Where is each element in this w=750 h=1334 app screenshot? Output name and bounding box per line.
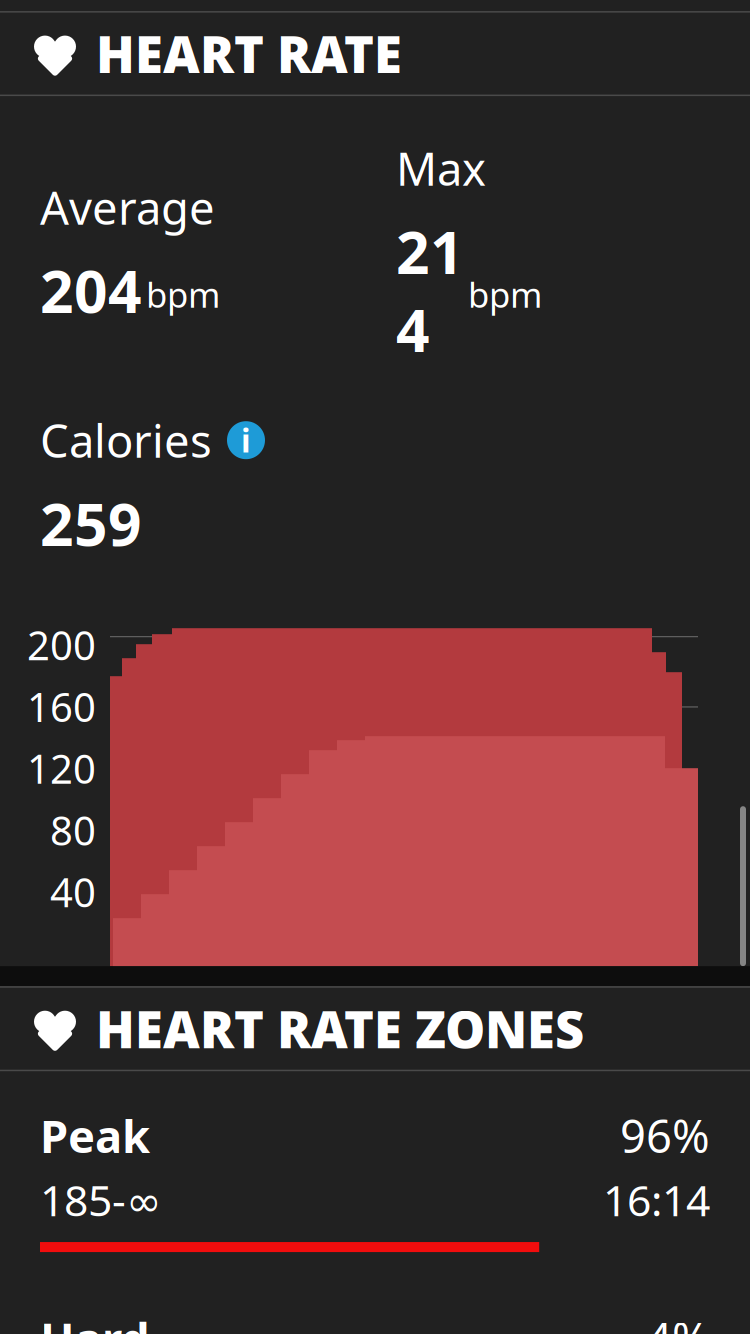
staticText: Average	[40, 177, 215, 237]
staticText: 96%	[620, 1105, 710, 1165]
button[interactable]: Peak	[0, 1071, 750, 1274]
staticText: 200	[27, 618, 96, 671]
button[interactable]: Hard	[0, 1274, 750, 1334]
staticText: i	[241, 419, 251, 461]
staticText: HEART RATE ZONES	[96, 995, 584, 1062]
staticText: 16:14	[603, 1171, 710, 1228]
staticText: 120	[27, 742, 96, 795]
staticText: 160	[27, 680, 96, 733]
staticText: Hard	[40, 1308, 150, 1334]
staticText: 185-∞	[40, 1171, 162, 1228]
staticText: bpm	[468, 271, 542, 317]
staticText: 40	[50, 865, 96, 918]
staticText: Calories	[40, 410, 212, 470]
staticText: 204	[40, 251, 142, 329]
staticText: bpm	[146, 271, 220, 317]
staticText: HEART RATE	[96, 20, 402, 87]
staticText: 259	[40, 484, 142, 562]
staticText: 80	[50, 803, 96, 856]
staticText: 4%	[646, 1308, 710, 1334]
staticText: Max	[396, 138, 486, 198]
button[interactable]: About calories	[226, 420, 266, 460]
staticText: 214	[396, 212, 464, 368]
staticText: Peak	[40, 1105, 150, 1165]
